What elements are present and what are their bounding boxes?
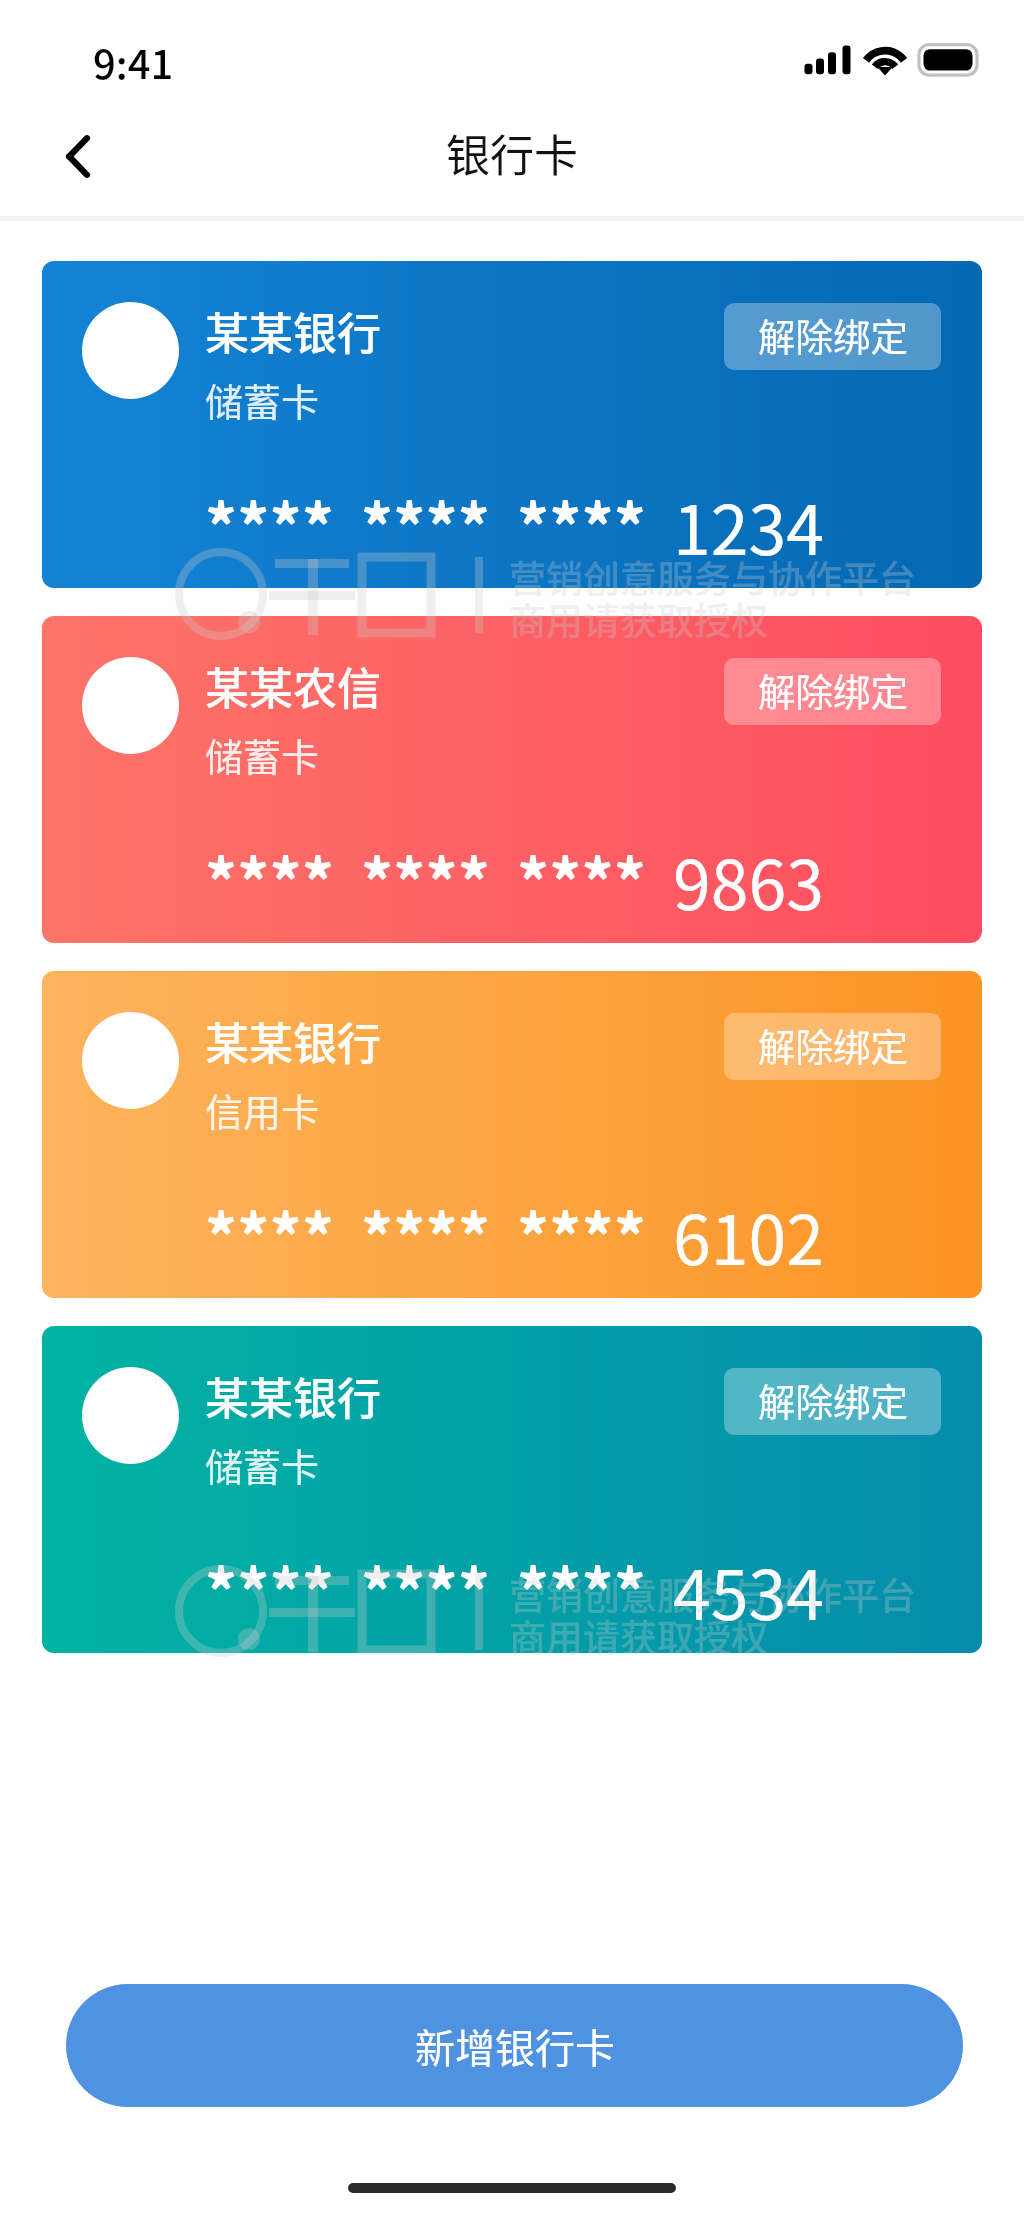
staticText: 4534 xyxy=(673,1541,824,1639)
staticText: 某某银行 xyxy=(205,1364,381,1428)
button[interactable]: 解除绑定 xyxy=(724,658,941,725)
staticText: 解除绑定 xyxy=(758,307,908,361)
staticText: 商用请获取授权 xyxy=(509,1609,768,1663)
staticText: 解除绑定 xyxy=(758,1017,908,1071)
staticText: 9:41 xyxy=(93,33,174,91)
button[interactable]: 某某农信 xyxy=(42,616,982,943)
staticText: 储蓄卡 xyxy=(205,1437,320,1492)
button[interactable]: 解除绑定 xyxy=(724,303,941,370)
staticText: 某某农信 xyxy=(205,654,381,718)
button[interactable]: 某某银行 xyxy=(42,261,982,588)
staticText: 解除绑定 xyxy=(758,662,908,716)
button[interactable]: 解除绑定 xyxy=(724,1368,941,1435)
staticText: 银行卡 xyxy=(446,121,578,185)
staticText: 储蓄卡 xyxy=(205,372,320,427)
staticText: 1234 xyxy=(673,476,824,574)
staticText: 营销创意服务与协作平台 xyxy=(509,1567,916,1621)
button[interactable]: 新增银行卡 xyxy=(66,1984,963,2107)
staticText: 储蓄卡 xyxy=(205,727,320,782)
staticText: 6102 xyxy=(673,1186,824,1284)
staticText: 解除绑定 xyxy=(758,1372,908,1426)
button[interactable]: 某某银行 xyxy=(42,1326,982,1653)
button[interactable]: 解除绑定 xyxy=(724,1013,941,1080)
staticText: 商用请获取授权 xyxy=(509,592,768,646)
staticText: 营销创意服务与协作平台 xyxy=(509,550,916,604)
staticText: 某某银行 xyxy=(205,1009,381,1073)
staticText: 9863 xyxy=(673,831,824,929)
staticText: 某某银行 xyxy=(205,299,381,363)
staticText: 新增银行卡 xyxy=(415,2017,615,2075)
button[interactable]: Back xyxy=(22,110,120,208)
staticText: 信用卡 xyxy=(205,1082,320,1137)
button[interactable]: 某某银行 xyxy=(42,971,982,1298)
